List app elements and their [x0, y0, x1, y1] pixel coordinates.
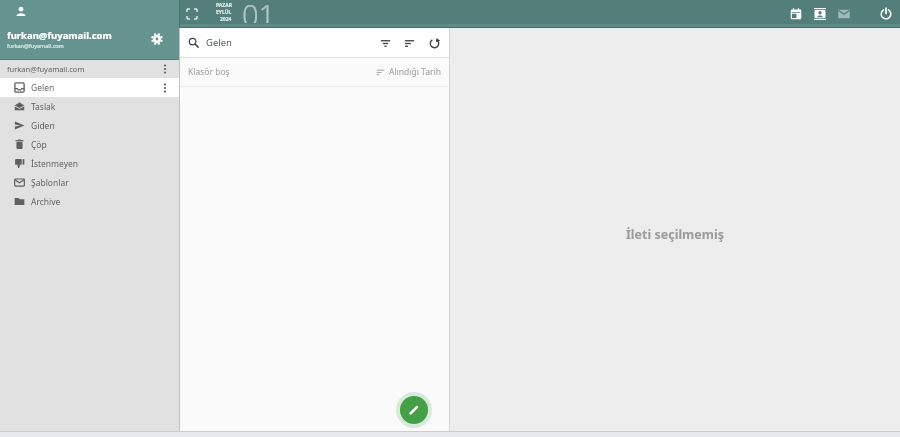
button[interactable]: Çöp [0, 135, 179, 154]
button[interactable]: Şablonlar [0, 173, 179, 192]
button[interactable] [423, 32, 445, 54]
staticText: Archive [31, 196, 61, 208]
button[interactable]: Giden [0, 116, 179, 135]
staticText: 01 [242, 0, 276, 23]
button[interactable]: Gelen [180, 28, 449, 57]
button[interactable]: Alındığı Tarih [376, 66, 441, 78]
staticText: Taslak [31, 101, 56, 113]
button[interactable] [784, 2, 808, 26]
button[interactable] [400, 396, 428, 424]
staticText: Klasör boş [188, 66, 230, 78]
button[interactable]: furkan@fuyamail.com [0, 0, 179, 60]
staticText: Şablonlar [31, 177, 69, 189]
staticText: furkan@fuyamail.com [7, 64, 85, 74]
button[interactable]: Gelen [0, 78, 179, 97]
button[interactable]: Taslak [0, 97, 179, 116]
button[interactable]: Archive [0, 192, 179, 211]
staticText: Gelen [206, 36, 232, 49]
button[interactable] [398, 32, 420, 54]
staticText: İleti seçilmemiş [626, 226, 724, 243]
staticText: furkan@fuyamail.com [7, 29, 112, 42]
staticText: 2024 [220, 16, 232, 23]
staticText: Çöp [31, 139, 47, 151]
button[interactable]: furkan@fuyamail.com [0, 60, 179, 78]
button[interactable] [187, 9, 197, 19]
button[interactable] [874, 2, 898, 26]
button[interactable] [808, 2, 832, 26]
staticText: furkan@fuyamail.com [7, 42, 64, 49]
staticText: Giden [31, 120, 55, 132]
button[interactable] [151, 33, 163, 45]
staticText: EYLÜL [216, 9, 232, 16]
button[interactable] [374, 32, 396, 54]
button[interactable] [832, 2, 856, 26]
staticText: İstenmeyen [31, 158, 79, 170]
button[interactable]: İstenmeyen [0, 154, 179, 173]
staticText: Gelen [31, 82, 55, 94]
staticText: Alındığı Tarih [389, 66, 441, 78]
staticText: PAZAR [216, 2, 232, 9]
